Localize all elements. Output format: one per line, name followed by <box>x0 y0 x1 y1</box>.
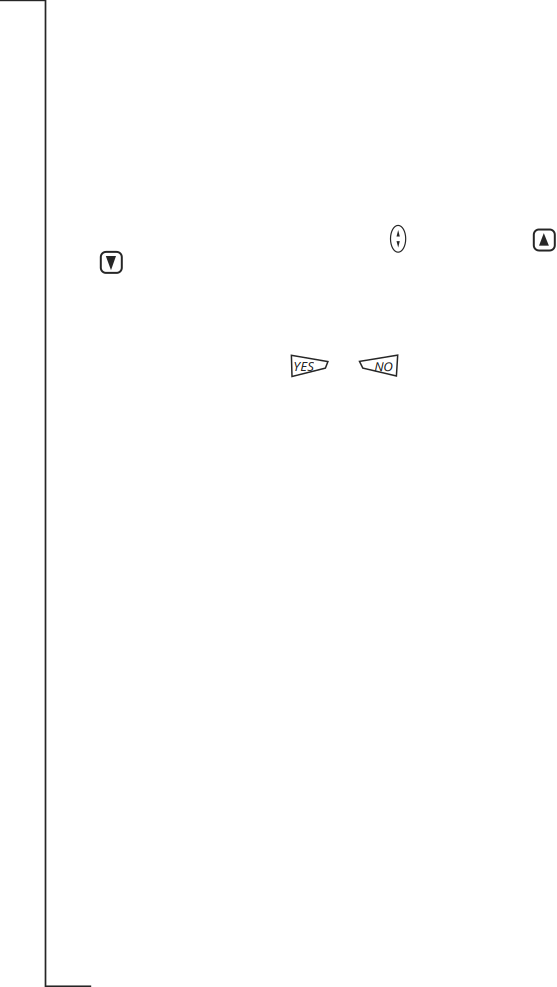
staticText: YES <box>293 357 314 375</box>
button[interactable]: Expand <box>534 229 555 250</box>
button[interactable]: Move up or down <box>390 225 406 253</box>
button[interactable]: NO <box>359 354 399 378</box>
button[interactable]: YES <box>290 354 330 378</box>
button[interactable]: Collapse <box>101 252 122 273</box>
staticText: NO <box>374 357 393 375</box>
